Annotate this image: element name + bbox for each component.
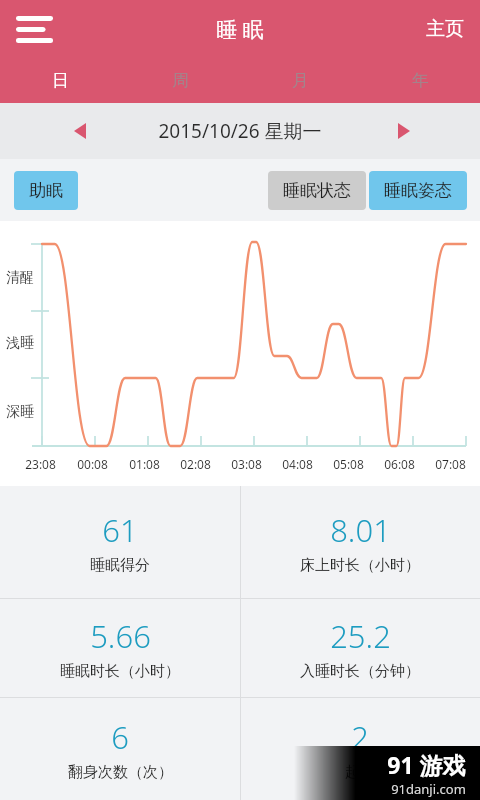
button[interactable]: 6 (0, 698, 240, 800)
button[interactable]: 年 (360, 58, 480, 103)
staticText: 日 (52, 70, 69, 91)
staticText: 睡眠得分 (90, 556, 150, 575)
staticText: 03:08 (231, 456, 262, 472)
staticText: 月 (292, 70, 309, 91)
staticText: 25.2 (330, 615, 391, 657)
staticText: 61 (102, 509, 138, 551)
staticText: 睡 眠 (216, 15, 264, 44)
staticText: 睡眠姿态 (384, 180, 452, 201)
button[interactable]: 周 (120, 58, 240, 103)
staticText: 00:08 (77, 456, 108, 472)
staticText: 2 (351, 716, 369, 758)
button[interactable]: 8.01 (240, 486, 480, 598)
staticText: 年 (412, 70, 429, 91)
staticText: 清醒 (6, 269, 34, 287)
button[interactable]: 睡眠姿态 (369, 171, 467, 210)
button[interactable]: 25.2 (240, 599, 480, 697)
button[interactable]: 5.66 (0, 599, 240, 697)
staticText: 07:08 (435, 456, 466, 472)
staticText: 翻身次数（次） (68, 763, 173, 782)
staticText: 23:08 (25, 456, 56, 472)
button[interactable]: 月 (240, 58, 360, 103)
button[interactable]: Previous day (62, 113, 98, 149)
staticText: 6 (111, 716, 129, 758)
staticText: 04:08 (282, 456, 313, 472)
staticText: 周 (172, 70, 189, 91)
staticText: 主页 (426, 17, 464, 41)
button[interactable]: 主页 (410, 5, 480, 53)
staticText: 深睡 (6, 403, 34, 421)
button[interactable]: Next day (386, 113, 422, 149)
staticText: 91danji.com (391, 780, 466, 798)
staticText: 02:08 (180, 456, 211, 472)
staticText: 助眠 (29, 180, 63, 201)
staticText: 91 游戏 (387, 749, 466, 780)
button[interactable]: 日 (0, 58, 120, 103)
staticText: 2015/10/26 星期一 (158, 118, 322, 144)
staticText: 床上时长（小时） (300, 556, 420, 575)
button[interactable]: 2 (240, 698, 480, 800)
staticText: 06:08 (384, 456, 415, 472)
staticText: 入睡时长（分钟） (300, 662, 420, 681)
button[interactable]: 睡眠状态 (268, 171, 366, 210)
staticText: 8.01 (330, 509, 391, 551)
staticText: 睡眠时长（小时） (60, 662, 180, 681)
button[interactable]: Menu (6, 1, 62, 57)
staticText: 5.66 (90, 615, 151, 657)
staticText: 05:08 (333, 456, 364, 472)
button[interactable]: 61 (0, 486, 240, 598)
staticText: 01:08 (129, 456, 160, 472)
button[interactable]: 助眠 (14, 171, 78, 210)
staticText: 起床 (345, 763, 375, 782)
staticText: 浅睡 (6, 334, 34, 352)
staticText: 睡眠状态 (283, 180, 351, 201)
